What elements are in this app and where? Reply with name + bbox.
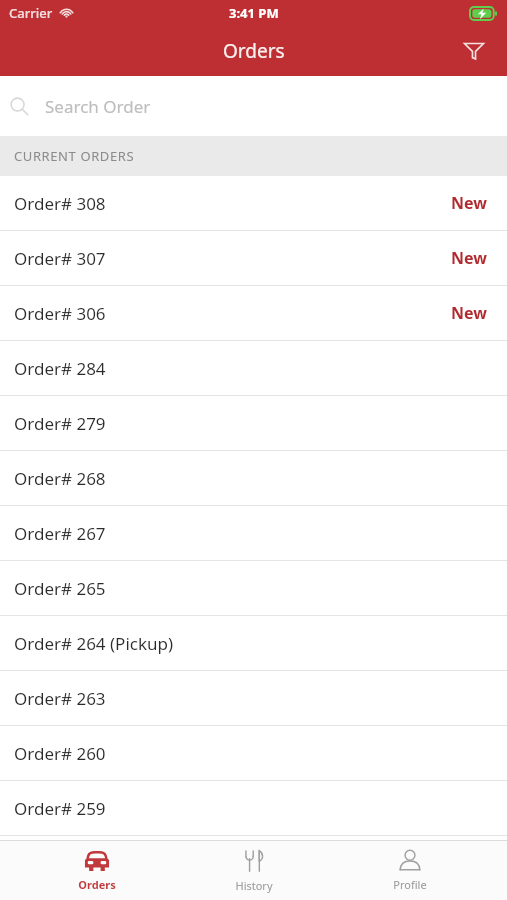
staticText: Order# 260 [14,742,106,765]
staticText: New [451,192,487,214]
button[interactable]: Order# 308 [0,176,507,230]
button[interactable]: Order# 279 [0,396,507,450]
button[interactable]: Order# 265 [0,561,507,615]
button[interactable]: Search Order [0,76,507,136]
button[interactable]: Order# 263 [0,671,507,725]
button[interactable]: Order# 260 [0,726,507,780]
staticText: Order# 265 [14,577,106,600]
staticText: Orders [78,877,116,892]
button[interactable]: Order# 268 [0,451,507,505]
staticText: Order# 263 [14,687,106,710]
button[interactable]: History [194,841,314,900]
staticText: Order# 264 (Pickup) [14,632,174,655]
button[interactable]: Order# 284 [0,341,507,395]
button[interactable]: Order# 259 [0,781,507,835]
staticText: Order# 307 [14,247,106,270]
staticText: Orders [223,38,285,64]
staticText: Order# 308 [14,192,106,215]
button[interactable]: Orders [37,841,157,900]
button[interactable]: Order# 267 [0,506,507,560]
staticText: Order# 267 [14,522,106,545]
staticText: Order# 279 [14,412,106,435]
staticText: Order# 268 [14,467,106,490]
staticText: Profile [393,877,427,892]
button[interactable]: Profile [350,841,470,900]
staticText: CURRENT ORDERS [14,147,135,165]
staticText: New [451,247,487,269]
staticText: Order# 306 [14,302,106,325]
button[interactable]: Order# 307 [0,231,507,285]
button[interactable]: Order# 264 (Pickup) [0,616,507,670]
button[interactable]: Filter [455,32,493,70]
staticText: History [235,878,273,893]
staticText: Order# 284 [14,357,106,380]
staticText: New [451,302,487,324]
staticText: Order# 259 [14,797,106,820]
button[interactable]: Order# 306 [0,286,507,340]
staticText: Carrier [9,4,53,22]
staticText: Search Order [45,95,151,118]
staticText: 3:41 PM [229,4,279,22]
